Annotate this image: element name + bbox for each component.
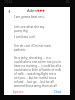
staticText: Aden bbox=[27, 8, 37, 13]
staticText: I can beat u all bbox=[14, 35, 63, 39]
staticText: Um oh cool if I'm not track pathetic bbox=[14, 44, 63, 52]
staticText: Chat bbox=[54, 89, 62, 93]
staticText: I am gonna beat on u bbox=[14, 15, 63, 19]
staticText: 10:24 bbox=[5, 0, 12, 4]
staticText: Ignore bbox=[13, 89, 24, 93]
button[interactable]: Back bbox=[6, 8, 13, 15]
staticText: Lets see what she say pussy thg bbox=[14, 25, 63, 33]
staticText: 4G bbox=[66, 0, 70, 4]
button[interactable]: Chat bbox=[54, 87, 62, 94]
staticText: Its a jerky, shrieking ... is a could ta… bbox=[14, 56, 63, 88]
button[interactable]: Ignore bbox=[13, 87, 24, 94]
